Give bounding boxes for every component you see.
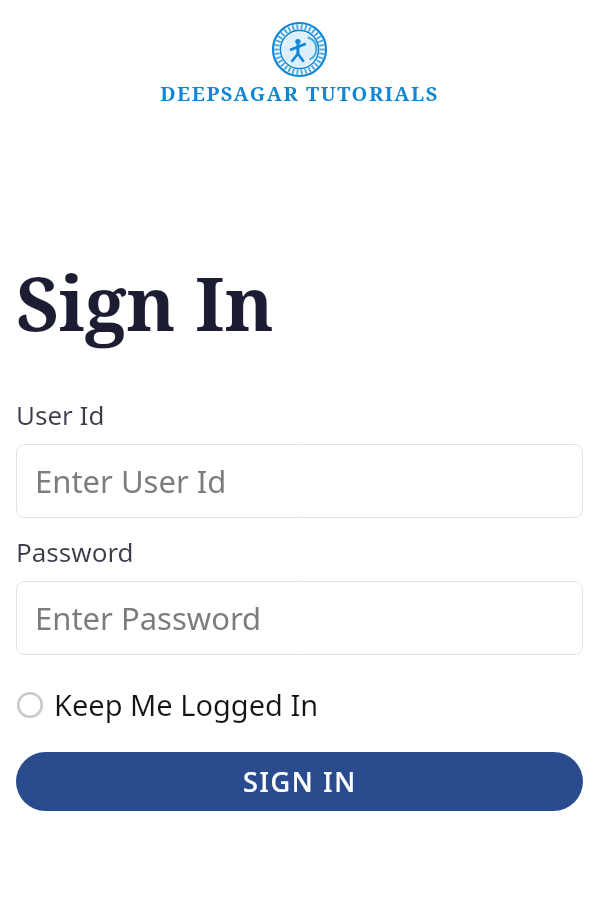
staticText: Password bbox=[16, 534, 134, 569]
button[interactable]: Keep Me Logged In bbox=[14, 679, 321, 730]
button[interactable]: SIGN IN bbox=[16, 752, 583, 811]
staticText: Enter User Id bbox=[35, 460, 227, 502]
staticText: DEEPSAGAR TUTORIALS bbox=[160, 80, 439, 107]
staticText: Keep Me Logged In bbox=[54, 685, 319, 724]
button[interactable]: Enter User Id bbox=[16, 444, 583, 518]
staticText: SIGN IN bbox=[243, 763, 357, 800]
staticText: User Id bbox=[16, 397, 105, 432]
staticText: Enter Password bbox=[35, 597, 262, 639]
button[interactable]: Enter Password bbox=[16, 581, 583, 655]
staticText: Sign In bbox=[16, 252, 274, 353]
